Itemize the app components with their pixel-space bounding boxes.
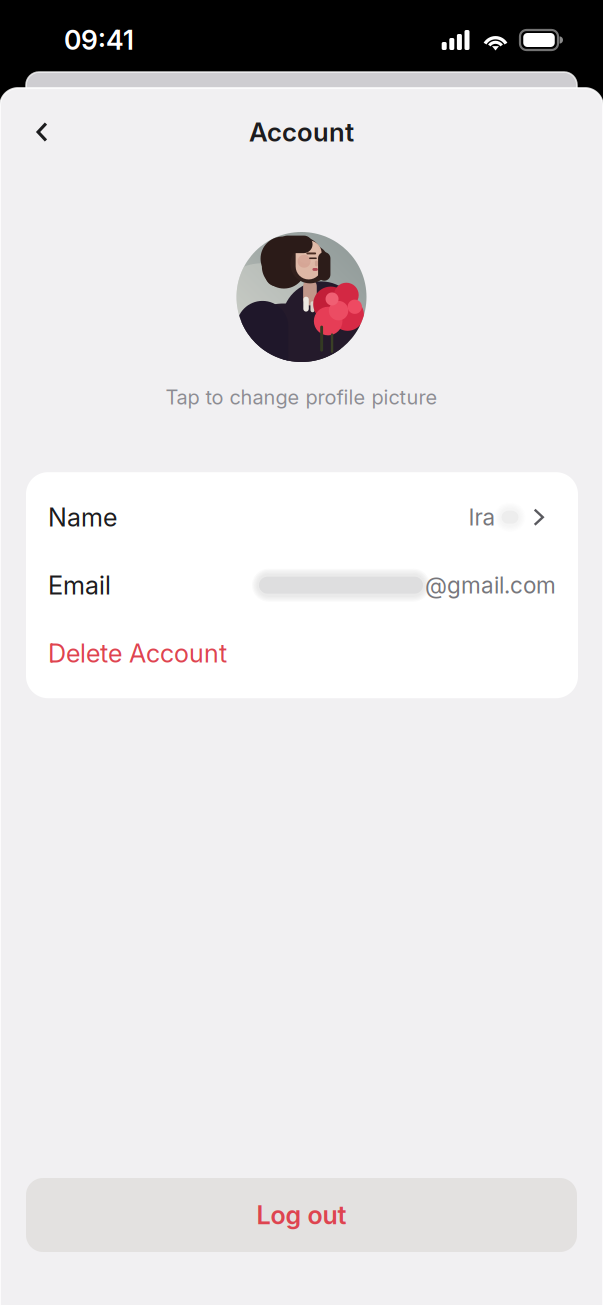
staticText: Log out	[256, 1200, 346, 1230]
staticText: Account	[249, 116, 354, 148]
staticText: Delete Account	[48, 638, 227, 669]
button[interactable]: Delete Account	[26, 619, 578, 687]
button[interactable]: Email	[26, 551, 578, 619]
staticText: Name	[48, 502, 117, 533]
button[interactable]: Log out	[26, 1178, 577, 1252]
staticText: @gmail.com	[425, 571, 556, 599]
staticText: 09:41	[64, 24, 134, 56]
staticText: Email	[48, 570, 111, 601]
button[interactable]: Name	[26, 483, 578, 551]
staticText: Ira	[468, 503, 495, 531]
button[interactable]: Back	[20, 110, 64, 154]
button[interactable]: Tap to change profile picture	[0, 232, 603, 409]
staticText: Tap to change profile picture	[165, 385, 437, 409]
